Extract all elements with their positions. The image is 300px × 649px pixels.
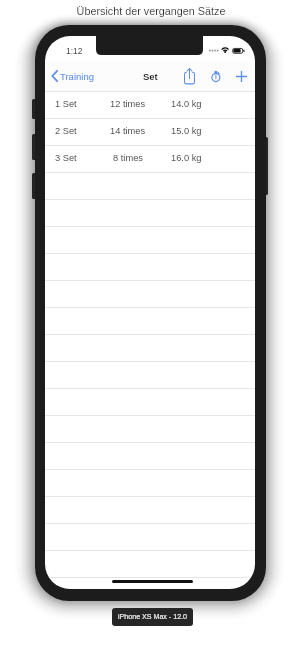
staticText: Set bbox=[143, 71, 158, 82]
staticText: iPhone XS Max - 12.0 bbox=[118, 613, 188, 621]
button[interactable]: 3 Set bbox=[45, 146, 255, 172]
staticText: 14.0 kg bbox=[171, 99, 202, 109]
staticText: Training bbox=[60, 71, 94, 82]
staticText: 16.0 kg bbox=[171, 153, 202, 163]
staticText: 12 times bbox=[110, 99, 146, 109]
button[interactable]: Timer bbox=[204, 63, 228, 89]
button[interactable]: Training bbox=[51, 70, 94, 82]
staticText: 2 Set bbox=[55, 126, 77, 136]
staticText: 15.0 kg bbox=[171, 126, 202, 136]
staticText: 3 Set bbox=[55, 153, 77, 163]
staticText: 8 times bbox=[113, 153, 143, 163]
button[interactable]: 1 Set bbox=[45, 92, 255, 118]
staticText: 1:12 bbox=[66, 46, 83, 55]
staticText: Übersicht der vergangen Sätze bbox=[1, 5, 300, 17]
button[interactable]: Add bbox=[229, 63, 253, 89]
staticText: 1 Set bbox=[55, 99, 77, 109]
staticText: 14 times bbox=[110, 126, 146, 136]
button[interactable]: 2 Set bbox=[45, 119, 255, 145]
button[interactable]: Share bbox=[177, 63, 201, 89]
button[interactable]: iPhone XS Max - 12.0 bbox=[112, 608, 193, 626]
